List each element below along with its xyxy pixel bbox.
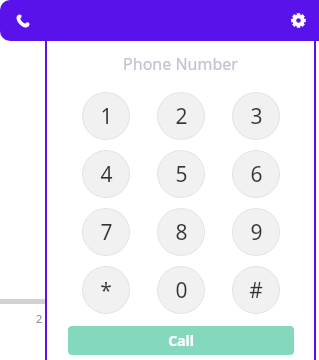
staticText: 9	[250, 218, 263, 247]
button[interactable]: 3	[232, 92, 280, 140]
button[interactable]: 6	[232, 150, 280, 198]
staticText: 0	[175, 276, 188, 305]
staticText: 4	[100, 160, 113, 189]
staticText: 1	[100, 102, 113, 131]
button[interactable]: *	[82, 266, 130, 314]
button[interactable]: 2	[157, 92, 205, 140]
button[interactable]: 5	[157, 150, 205, 198]
button[interactable]: Settings	[284, 6, 312, 34]
staticText: 3	[250, 102, 263, 131]
staticText: 5	[175, 160, 188, 189]
staticText: 2	[175, 102, 188, 131]
button[interactable]: Dialer	[8, 7, 36, 35]
button[interactable]: Call	[68, 326, 294, 355]
staticText: Call	[168, 331, 194, 350]
button[interactable]: 4	[82, 150, 130, 198]
button[interactable]: #	[232, 266, 280, 314]
staticText: 6	[250, 160, 263, 189]
staticText: 8	[175, 218, 188, 247]
button[interactable]: 9	[232, 208, 280, 256]
button[interactable]: 0	[157, 266, 205, 314]
staticText: Phone Number	[123, 53, 238, 75]
staticText: *	[100, 276, 112, 305]
staticText: #	[249, 276, 263, 305]
staticText: 7	[100, 218, 113, 247]
staticText: 2	[36, 311, 43, 326]
button[interactable]: 8	[157, 208, 205, 256]
button[interactable]: 1	[82, 92, 130, 140]
button[interactable]: 7	[82, 208, 130, 256]
